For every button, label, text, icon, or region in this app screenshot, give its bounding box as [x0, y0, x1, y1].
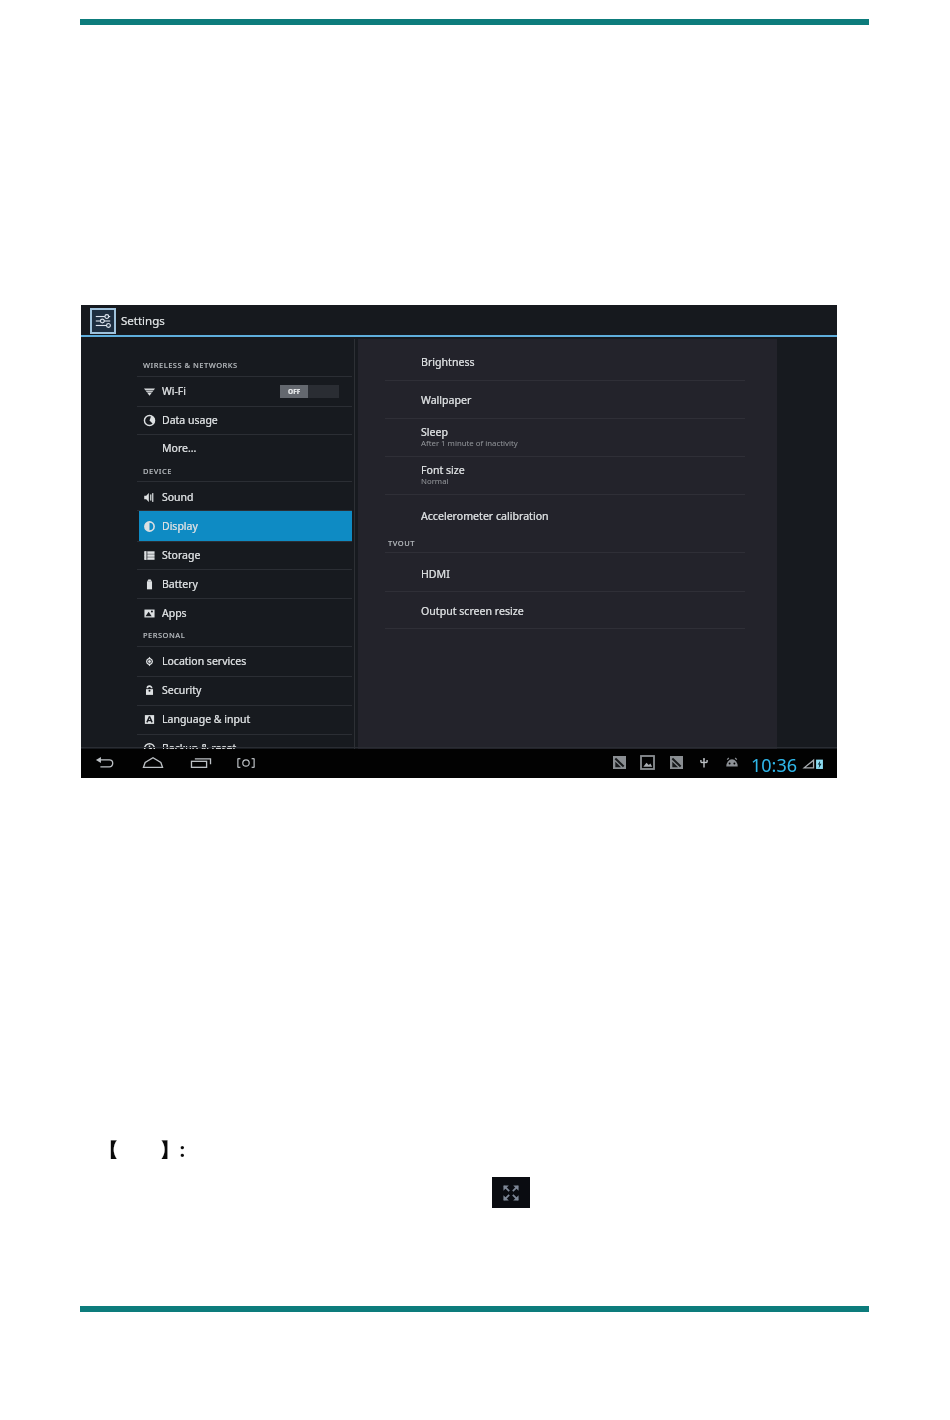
- button[interactable]: More...: [144, 441, 352, 455]
- staticText: TVOUT: [388, 538, 415, 548]
- button[interactable]: Accelerometer calibration: [385, 502, 745, 530]
- button[interactable]: Back: [92, 751, 120, 775]
- staticText: Battery: [162, 577, 198, 591]
- staticText: Language & input: [162, 712, 251, 726]
- button[interactable]: Full screen: [492, 1177, 530, 1208]
- button[interactable]: Data usage: [144, 413, 352, 427]
- staticText: 【 】:: [98, 1136, 186, 1163]
- staticText: More...: [162, 441, 197, 455]
- button[interactable]: Home: [139, 751, 167, 775]
- button[interactable]: Recent apps: [187, 751, 215, 775]
- button[interactable]: Sleep: [385, 418, 745, 452]
- staticText: Storage: [162, 548, 201, 562]
- staticText: Display: [162, 519, 198, 533]
- staticText: WIRELESS & NETWORKS: [143, 360, 238, 370]
- button[interactable]: HDMI: [385, 560, 745, 588]
- staticText: Backup & reset: [162, 741, 237, 755]
- staticText: Wi-Fi: [162, 384, 187, 398]
- button[interactable]: Backup & reset: [144, 741, 352, 755]
- button[interactable]: Storage: [144, 548, 352, 562]
- button[interactable]: Language & input: [144, 712, 352, 726]
- button[interactable]: Output screen resize: [385, 597, 745, 625]
- staticText: Sound: [162, 490, 194, 504]
- button[interactable]: Apps: [144, 606, 352, 620]
- button[interactable]: Sound: [144, 490, 352, 504]
- button[interactable]: Wallpaper: [385, 386, 745, 414]
- button[interactable]: Security: [144, 683, 352, 697]
- staticText: Location services: [162, 654, 247, 668]
- staticText: HDMI: [421, 567, 450, 581]
- button[interactable]: Battery: [144, 577, 352, 591]
- button[interactable]: Display: [144, 519, 352, 533]
- staticText: Apps: [162, 606, 187, 620]
- button[interactable]: Settings app icon: [92, 310, 114, 332]
- button[interactable]: Screenshot: [232, 751, 260, 775]
- staticText: Normal: [421, 476, 449, 487]
- staticText: Output screen resize: [421, 604, 524, 618]
- staticText: DEVICE: [143, 466, 172, 476]
- button[interactable]: Location services: [144, 654, 352, 668]
- staticText: 10:36: [751, 753, 798, 778]
- staticText: OFF: [288, 387, 301, 396]
- staticText: Data usage: [162, 413, 218, 427]
- staticText: Wallpaper: [421, 393, 472, 407]
- button[interactable]: Brightness: [385, 348, 745, 376]
- staticText: Accelerometer calibration: [421, 509, 549, 523]
- staticText: Security: [162, 683, 202, 697]
- staticText: Brightness: [421, 355, 475, 369]
- staticText: After 1 minute of inactivity: [421, 438, 518, 449]
- staticText: PERSONAL: [143, 630, 186, 640]
- staticText: Font size: [421, 463, 465, 477]
- staticText: Settings: [121, 313, 165, 329]
- button[interactable]: Wi-Fi: [144, 384, 352, 398]
- staticText: Sleep: [421, 425, 449, 439]
- button[interactable]: Font size: [385, 456, 745, 490]
